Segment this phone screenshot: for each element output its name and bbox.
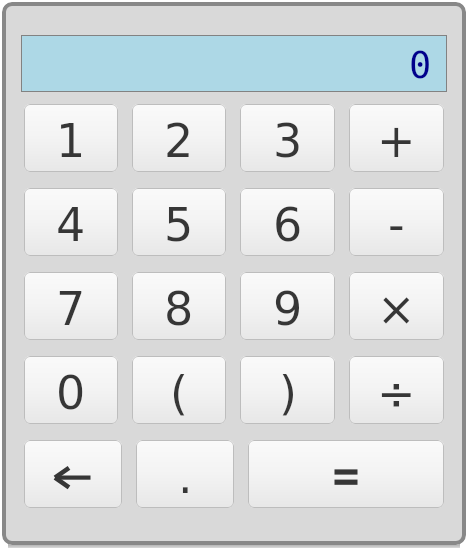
staticText: 5 <box>164 198 194 252</box>
staticText: 4 <box>56 198 86 252</box>
staticText: 1 <box>56 114 86 168</box>
staticText: ÷ <box>377 366 416 420</box>
staticText: 6 <box>273 198 303 252</box>
staticText: ) <box>279 366 297 420</box>
button[interactable] <box>248 440 444 508</box>
staticText: 8 <box>164 282 194 336</box>
button[interactable]: 8 <box>132 272 226 340</box>
button[interactable]: 3 <box>240 104 335 172</box>
button[interactable]: . <box>136 440 234 508</box>
staticText: 9 <box>273 282 303 336</box>
button[interactable]: + <box>349 104 444 172</box>
staticText: 2 <box>164 114 194 168</box>
staticText: - <box>388 198 405 252</box>
button[interactable]: 0 <box>21 35 447 92</box>
button[interactable]: 9 <box>240 272 335 340</box>
staticText: + <box>377 114 416 168</box>
button[interactable] <box>24 440 122 508</box>
button[interactable]: ( <box>132 356 226 424</box>
staticText: 0 <box>56 366 86 420</box>
button[interactable]: 1 <box>24 104 118 172</box>
staticText: ( <box>170 366 188 420</box>
button[interactable]: ) <box>240 356 335 424</box>
staticText: 0 <box>409 44 432 87</box>
button[interactable]: 5 <box>132 188 226 256</box>
staticText: × <box>377 282 416 336</box>
button[interactable]: 2 <box>132 104 226 172</box>
button[interactable]: 6 <box>240 188 335 256</box>
button[interactable]: 7 <box>24 272 118 340</box>
button[interactable]: 0 <box>24 356 118 424</box>
staticText: 3 <box>273 114 303 168</box>
button[interactable]: - <box>349 188 444 256</box>
staticText: 7 <box>56 282 86 336</box>
staticText: . <box>178 450 193 504</box>
button[interactable]: ÷ <box>349 356 444 424</box>
button[interactable]: × <box>349 272 444 340</box>
button[interactable]: 4 <box>24 188 118 256</box>
